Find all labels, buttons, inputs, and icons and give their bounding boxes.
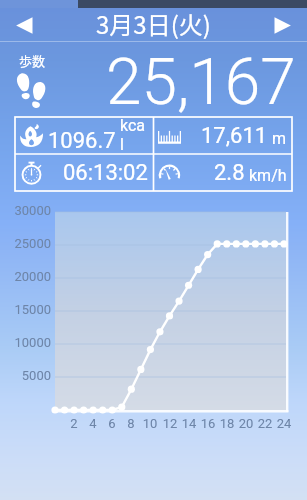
staticText: 14 xyxy=(178,416,200,431)
staticText: 15000 xyxy=(3,302,51,317)
staticText: 10 xyxy=(139,416,161,431)
staticText: 歩数 xyxy=(19,51,46,70)
staticText: 12 xyxy=(159,416,181,431)
staticText: 3月3日(火) xyxy=(96,6,211,40)
staticText: km/h xyxy=(249,166,287,185)
staticText: 2.8 xyxy=(214,160,245,186)
staticText: 10000 xyxy=(3,335,51,350)
staticText: 8 xyxy=(120,416,142,431)
staticText: 25,167 xyxy=(106,45,296,117)
staticText: 20 xyxy=(235,416,257,431)
staticText: 25000 xyxy=(3,236,51,251)
button[interactable]: 2.8 xyxy=(153,154,292,191)
staticText: 22 xyxy=(254,416,276,431)
staticText: 24 xyxy=(273,416,295,431)
staticText: 18 xyxy=(216,416,238,431)
button[interactable]: Previous day xyxy=(0,8,49,42)
staticText: kcal xyxy=(120,116,148,153)
button[interactable]: Next day xyxy=(258,8,307,42)
button[interactable]: 06:13:02 xyxy=(15,154,153,191)
staticText: 5000 xyxy=(3,368,51,383)
staticText: 20000 xyxy=(3,269,51,284)
staticText: 1096.7 xyxy=(48,128,116,154)
staticText: 2 xyxy=(63,416,85,431)
staticText: 4 xyxy=(82,416,104,431)
staticText: 6 xyxy=(101,416,123,431)
staticText: m xyxy=(272,129,287,148)
button[interactable]: 1096.7 xyxy=(15,117,153,154)
staticText: 30000 xyxy=(3,203,51,218)
staticText: 17,611 xyxy=(201,123,268,149)
button[interactable]: 17,611 xyxy=(153,117,292,154)
staticText: 16 xyxy=(197,416,219,431)
staticText: 06:13:02 xyxy=(63,160,148,186)
